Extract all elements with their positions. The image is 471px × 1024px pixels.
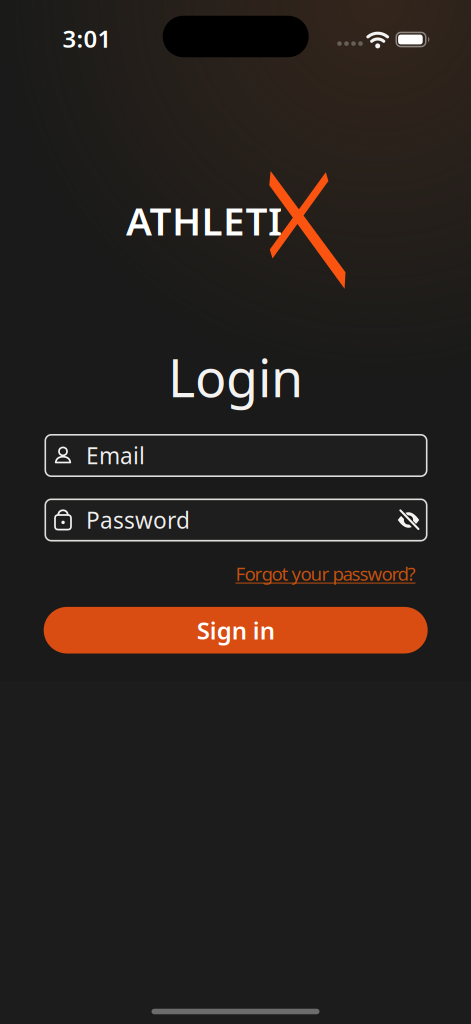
staticText: Sign in — [197, 614, 275, 646]
staticText: Email — [86, 440, 145, 470]
staticText: Forgot your password? — [235, 561, 415, 586]
button[interactable]: Forgot your password? — [235, 561, 415, 586]
button[interactable]: Sign in — [44, 607, 428, 653]
staticText: 3:01 — [62, 23, 111, 54]
staticText: ATHLETI — [126, 195, 282, 246]
staticText: Login — [168, 342, 303, 412]
button[interactable]: Email — [44, 434, 427, 477]
button[interactable]: Password — [44, 498, 427, 541]
staticText: Password — [86, 505, 190, 535]
